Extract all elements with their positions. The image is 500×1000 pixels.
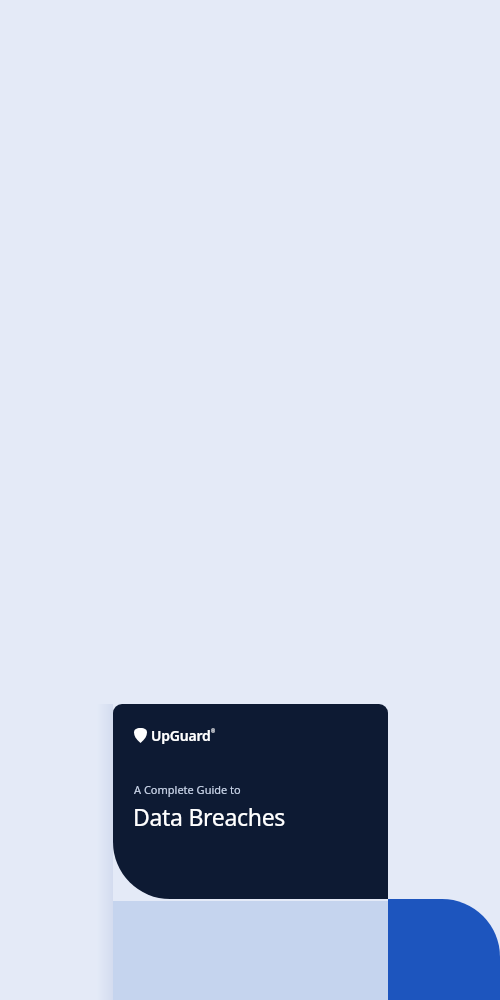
staticText: A Complete Guide to [134, 782, 241, 797]
staticText: Data Breaches [133, 801, 286, 832]
other: UpGuard logo [134, 726, 216, 745]
button[interactable] [388, 899, 500, 1000]
staticText: UpGuard [151, 726, 211, 745]
button[interactable]: UpGuard logo [113, 704, 388, 899]
staticText: ® [211, 728, 216, 735]
